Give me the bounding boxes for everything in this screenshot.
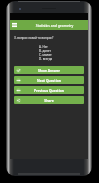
button[interactable]: Menu xyxy=(10,20,19,30)
staticText: C. может xyxy=(39,53,52,57)
button[interactable]: Previous Question xyxy=(14,86,84,94)
staticText: D. всегда xyxy=(39,57,53,61)
staticText: Statistics and geometry xyxy=(21,23,88,28)
staticText: Previous Question xyxy=(34,88,64,92)
button[interactable]: Share xyxy=(14,96,84,104)
staticText: Next Question xyxy=(37,78,61,82)
staticText: Share xyxy=(44,98,54,102)
staticText: A. Нет xyxy=(39,45,48,49)
staticText: Show Answer xyxy=(38,68,60,72)
button[interactable]: Next Question xyxy=(14,76,84,84)
button[interactable]: Show Answer xyxy=(14,66,84,74)
staticText: 3. вопрос какой то вопрос? xyxy=(14,36,54,40)
staticText: B. данет xyxy=(39,49,51,53)
